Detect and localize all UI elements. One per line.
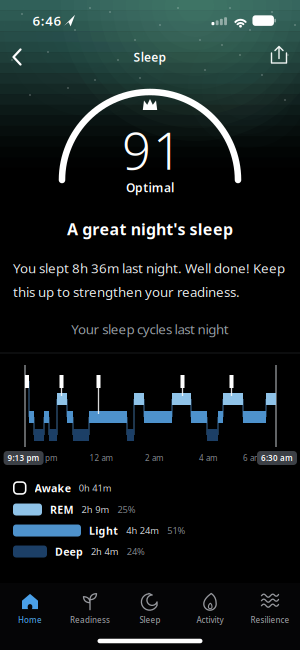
button[interactable]: Sleep [121,589,179,627]
button[interactable]: Home [1,589,59,627]
staticText: 9:13 pm [8,453,40,463]
staticText: 24% [127,545,145,558]
staticText: Sleep [139,615,160,625]
staticText: 6:30 am [261,453,293,463]
staticText: 51% [167,524,186,537]
staticText: 2h 4m [91,545,119,558]
staticText: Awake [34,481,71,495]
staticText: Home [18,615,42,625]
staticText: Optimal [126,179,174,195]
staticText: 2 am [145,453,163,463]
staticText: REM [50,502,74,517]
staticText: 91 [122,116,182,184]
button[interactable]: Resilience [241,589,299,627]
staticText: 6 am [243,453,261,463]
staticText: 6:46 [33,12,61,29]
button[interactable]: Back [0,40,34,74]
staticText: Light [89,523,118,538]
staticText: 4 am [199,453,217,463]
staticText: Resilience [250,615,289,625]
staticText: Your sleep cycles last night [71,320,229,338]
staticText: 0h 41m [79,482,112,494]
button[interactable]: Activity [181,589,239,627]
staticText: this up to strengthen your readiness. [13,283,240,301]
staticText: Sleep [134,49,166,65]
staticText: You slept 8h 36m last night. Well done! … [13,259,285,277]
staticText: Deep [55,544,83,559]
staticText: A great night's sleep [67,218,233,240]
button[interactable]: Readiness [61,589,119,627]
staticText: 12 am [89,453,112,463]
staticText: 2h 9m [82,503,109,516]
staticText: 10 pm [33,453,57,463]
staticText: 4h 24m [126,524,159,537]
staticText: Activity [196,615,223,625]
button[interactable]: Share [262,39,296,73]
staticText: 25% [117,503,136,516]
staticText: Readiness [70,615,110,625]
